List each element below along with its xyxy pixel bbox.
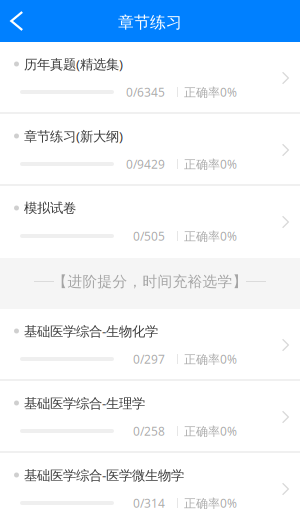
staticText: 0/505 — [133, 228, 165, 244]
staticText: 0/297 — [133, 351, 165, 367]
button[interactable]: 模拟试卷 — [0, 186, 300, 258]
staticText: 【进阶提分，时间充裕选学】 — [52, 272, 247, 290]
staticText: 基础医学综合-生物化学 — [24, 322, 158, 340]
staticText: 正确率0% — [184, 495, 237, 511]
staticText: 正确率0% — [184, 228, 237, 244]
button[interactable]: 基础医学综合-医学微生物学 — [0, 453, 300, 523]
button[interactable]: Back — [0, 0, 44, 42]
button[interactable]: 基础医学综合-生物化学 — [0, 309, 300, 381]
staticText: 0/314 — [133, 495, 165, 511]
staticText: 模拟试卷 — [24, 200, 76, 216]
staticText: 正确率0% — [184, 351, 237, 367]
staticText: 0/258 — [133, 423, 165, 439]
button[interactable]: 历年真题(精选集) — [0, 42, 300, 114]
staticText: 基础医学综合-医学微生物学 — [24, 466, 184, 484]
button[interactable]: 章节练习(新大纲) — [0, 114, 300, 186]
staticText: 章节练习(新大纲) — [24, 127, 123, 145]
staticText: 正确率0% — [184, 84, 237, 100]
staticText: 正确率0% — [184, 423, 237, 439]
staticText: 基础医学综合-生理学 — [24, 394, 145, 412]
staticText: 正确率0% — [184, 156, 237, 172]
button[interactable]: 基础医学综合-生理学 — [0, 381, 300, 453]
staticText: 0/6345 — [126, 84, 165, 100]
staticText: 0/9429 — [126, 156, 165, 172]
staticText: 章节练习 — [118, 13, 182, 32]
staticText: 历年真题(精选集) — [24, 55, 123, 73]
